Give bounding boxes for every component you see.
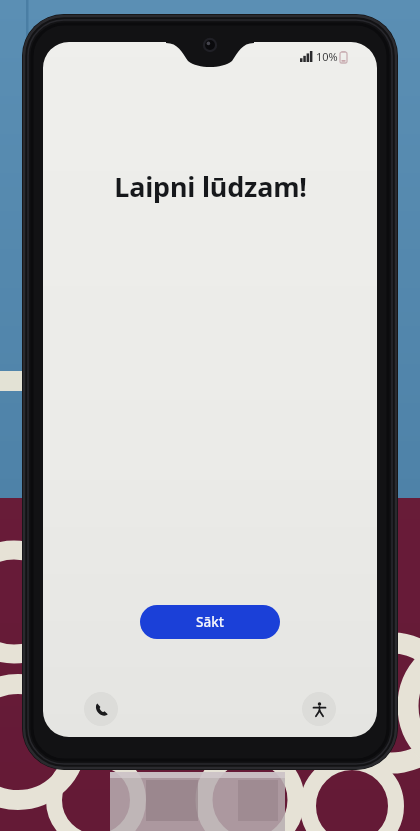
staticText: Laipni lūdzam!	[114, 168, 307, 205]
button[interactable]: Accessibility	[302, 692, 336, 726]
staticText: 10%	[316, 49, 338, 64]
button[interactable]: Sākt	[140, 605, 280, 639]
staticText: Sākt	[196, 613, 224, 631]
button[interactable]: Emergency call	[84, 692, 118, 726]
